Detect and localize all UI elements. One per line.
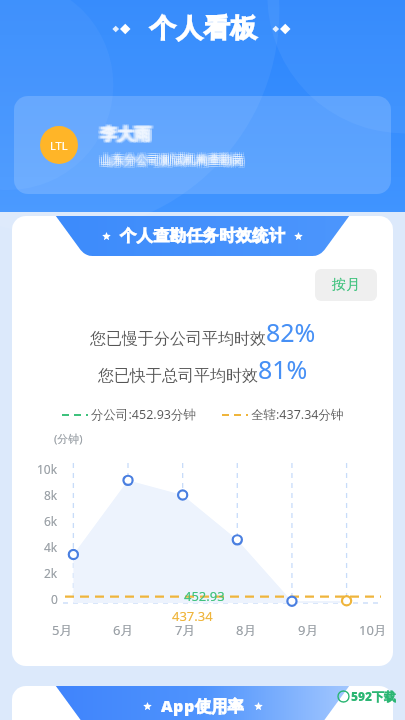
staticText: 山东分公司测试机构查勘岗 xyxy=(102,154,246,169)
staticText: 山东分公司测试机构查勘岗 xyxy=(98,154,242,169)
staticText: 山东分公司测试机构查勘岗 xyxy=(100,150,244,165)
staticText: 0 xyxy=(51,591,58,607)
staticText: 分公司:452.93分钟 xyxy=(91,406,196,423)
staticText: 李大雨 xyxy=(100,125,151,146)
staticText: 452.93 xyxy=(184,587,225,605)
staticText: 您已快于总司平均时效 xyxy=(98,366,258,386)
button[interactable]: LTL xyxy=(14,96,391,194)
staticText: 山东分公司测试机构查勘岗 xyxy=(102,152,246,167)
staticText: 8k xyxy=(44,487,58,503)
staticText: 山东分公司测试机构查勘岗 xyxy=(100,152,244,167)
staticText: 李大雨 xyxy=(100,124,151,145)
staticText: 李大雨 xyxy=(98,125,149,146)
staticText: 5月 xyxy=(52,621,73,639)
staticText: App使用率 xyxy=(161,695,245,717)
staticText: 81% xyxy=(258,352,308,386)
staticText: 山东分公司测试机构查勘岗 xyxy=(100,154,244,169)
staticText: 592下载 xyxy=(351,688,397,704)
staticText: 7月 xyxy=(175,621,196,639)
staticText: 9月 xyxy=(298,621,319,639)
staticText: 437.34 xyxy=(172,607,213,625)
staticText: 李大雨 xyxy=(102,125,153,146)
staticText: 您已慢于分公司平均时效 xyxy=(90,329,266,349)
staticText: 李大雨 xyxy=(100,123,151,144)
staticText: 李大雨 xyxy=(102,124,153,145)
staticText: 李大雨 xyxy=(102,123,153,144)
staticText: 10月 xyxy=(359,621,387,639)
staticText: 8月 xyxy=(236,621,257,639)
staticText: 6月 xyxy=(113,621,134,639)
staticText: 10k xyxy=(37,461,58,477)
staticText: (分钟) xyxy=(54,431,83,446)
staticText: 李大雨 xyxy=(98,123,149,144)
staticText: LTL xyxy=(50,138,68,153)
staticText: 山东分公司测试机构查勘岗 xyxy=(98,150,242,165)
staticText: 个人查勘任务时效统计 xyxy=(120,226,285,246)
staticText: 山东分公司测试机构查勘岗 xyxy=(102,150,246,165)
staticText: 2k xyxy=(44,565,58,581)
staticText: 82% xyxy=(266,315,316,349)
staticText: 个人看板 xyxy=(149,12,257,45)
staticText: 山东分公司测试机构查勘岗 xyxy=(98,152,242,167)
staticText: 6k xyxy=(44,513,58,529)
staticText: 按月 xyxy=(332,276,360,294)
staticText: 李大雨 xyxy=(98,124,149,145)
staticText: 4k xyxy=(44,539,58,555)
staticText: 全辖:437.34分钟 xyxy=(251,406,344,423)
button[interactable]: 按月 xyxy=(315,269,377,301)
